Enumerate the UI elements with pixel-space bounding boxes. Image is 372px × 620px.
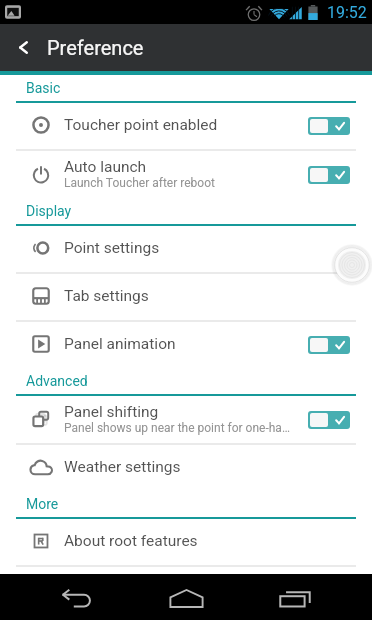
staticText: Tab settings	[64, 287, 149, 305]
button[interactable]: Back	[41, 574, 113, 620]
staticText: Panel animation	[64, 335, 176, 353]
button[interactable]: Toggle	[308, 166, 350, 184]
button[interactable]: Auto launch	[0, 151, 372, 198]
staticText: Auto launch	[64, 158, 147, 176]
button[interactable]: Toucher point enabled	[0, 103, 372, 149]
button[interactable]: Weather settings	[0, 445, 372, 491]
staticText: More	[26, 496, 59, 512]
staticText: Display	[26, 203, 72, 219]
button[interactable]: Toggle	[308, 336, 350, 354]
button[interactable]: Panel animation	[0, 322, 372, 368]
button[interactable]: Recents	[259, 574, 331, 620]
staticText: Basic	[26, 80, 61, 96]
staticText: 19:52	[327, 3, 367, 22]
staticText: Point settings	[64, 239, 160, 257]
button[interactable]: Toggle	[308, 411, 350, 429]
button[interactable]: About root features	[0, 519, 372, 565]
staticText: Advanced	[26, 373, 88, 389]
button[interactable]: Toggle	[308, 117, 350, 135]
staticText: Panel shows up near the point for one-ha…	[64, 421, 290, 435]
staticText: Preference	[47, 36, 144, 59]
staticText: Launch Toucher after reboot	[64, 176, 215, 190]
staticText: Panel shifting	[64, 403, 159, 421]
button[interactable]: Point settings	[0, 226, 372, 272]
staticText: Toucher point enabled	[64, 116, 218, 134]
button[interactable]: Tab settings	[0, 274, 372, 320]
button[interactable]: Toucher point	[332, 245, 372, 285]
staticText: Weather settings	[64, 458, 181, 476]
staticText: About root features	[64, 532, 198, 550]
button[interactable]: Back	[0, 24, 47, 71]
button[interactable]: Panel shifting	[0, 396, 372, 443]
button[interactable]: Home	[150, 574, 222, 620]
